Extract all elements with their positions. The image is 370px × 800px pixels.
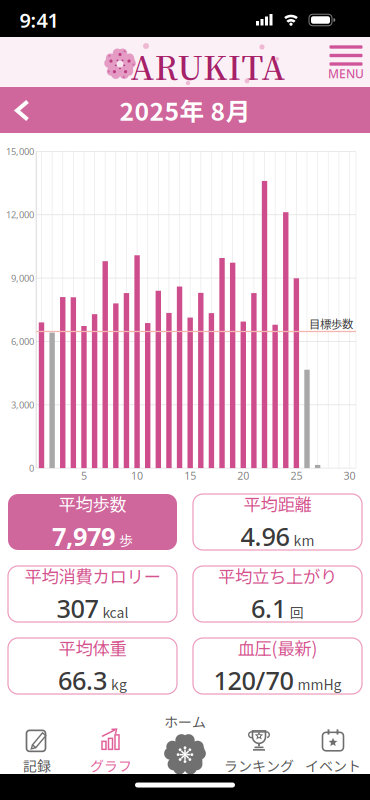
staticText: 20	[237, 468, 249, 483]
staticText: 25	[290, 468, 302, 483]
staticText: 6,000	[11, 335, 34, 348]
staticText: MENU	[328, 65, 364, 81]
staticText: 平均距離	[243, 491, 311, 516]
button[interactable]: ランキング	[217, 722, 301, 782]
button[interactable]: 平均距離	[193, 494, 362, 550]
button[interactable]: Back	[0, 87, 44, 133]
button[interactable]: Menu	[324, 41, 368, 81]
staticText: 平均体重	[58, 635, 126, 660]
staticText: 記録	[23, 755, 51, 776]
staticText: 血圧(最新)	[237, 635, 317, 660]
staticText: 9,000	[11, 272, 34, 284]
staticText: 307	[56, 591, 98, 625]
staticText: kg	[111, 674, 127, 694]
button[interactable]: 平均体重	[8, 638, 177, 694]
staticText: 30	[343, 468, 355, 483]
button[interactable]: ホーム	[147, 711, 223, 777]
staticText: 2025年 8月	[119, 92, 250, 128]
staticText: 6.1	[251, 591, 286, 625]
staticText: 15	[184, 468, 196, 483]
staticText: 12,000	[6, 208, 34, 221]
button[interactable]: 記録	[0, 722, 79, 782]
button[interactable]: イベント	[291, 722, 370, 782]
button[interactable]: 血圧(最新)	[193, 638, 362, 694]
staticText: 3,000	[11, 399, 34, 411]
staticText: 120/70	[213, 663, 293, 697]
staticText: ホーム	[164, 711, 206, 732]
staticText: 平均立ち上がり	[218, 563, 337, 588]
staticText: 9:41	[19, 7, 58, 33]
staticText: イベント	[305, 755, 361, 776]
staticText: 目標歩数	[309, 315, 353, 332]
staticText: 回	[290, 602, 304, 622]
staticText: kcal	[102, 602, 128, 622]
staticText: 平均消費カロリー	[24, 563, 160, 588]
staticText: 66.3	[58, 663, 107, 697]
staticText: mmHg	[297, 674, 341, 694]
staticText: 7,979	[52, 519, 115, 553]
staticText: 10	[131, 468, 143, 483]
staticText: 平均歩数	[58, 491, 126, 516]
staticText: km	[293, 530, 314, 550]
staticText: 歩	[119, 530, 133, 550]
staticText: 4.96	[240, 519, 289, 553]
button[interactable]: 平均立ち上がり	[193, 566, 362, 622]
button[interactable]: 平均歩数	[8, 494, 177, 550]
staticText: 0	[29, 462, 34, 474]
button[interactable]: 平均消費カロリー	[8, 566, 177, 622]
staticText: 15,000	[6, 145, 34, 158]
staticText: グラフ	[90, 755, 132, 776]
button[interactable]: グラフ	[69, 722, 153, 782]
staticText: ランキング	[224, 755, 294, 776]
staticText: ARUKITA	[131, 43, 285, 89]
staticText: 5	[81, 468, 87, 483]
